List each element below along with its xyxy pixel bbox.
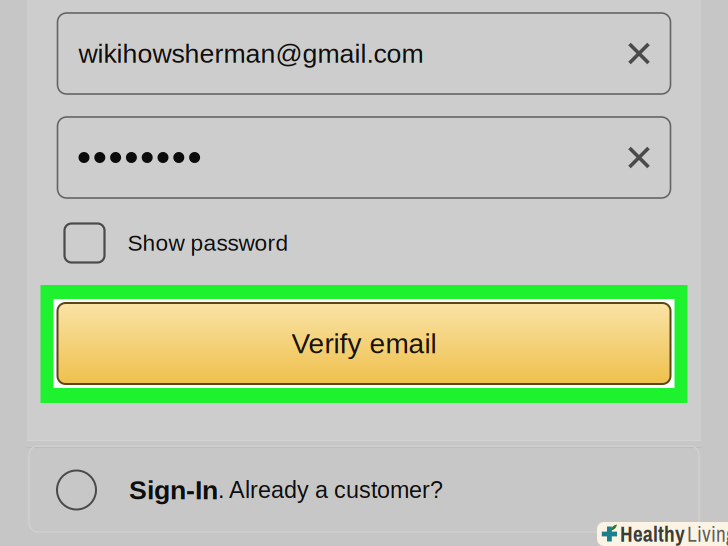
button[interactable] <box>57 117 670 198</box>
staticText: Show password <box>127 230 288 256</box>
staticText: . Already a customer? <box>218 477 443 503</box>
staticText: Verify email <box>291 328 436 359</box>
staticText: wikihowsherman@gmail.com <box>78 39 423 68</box>
staticText: Sign-In <box>129 475 218 505</box>
button[interactable]: Sign-In <box>26 448 702 532</box>
button[interactable]: Show password <box>57 223 670 263</box>
staticText: Living <box>687 520 728 546</box>
button[interactable]: Verify email <box>40 285 687 403</box>
button[interactable]: wikihowsherman@gmail.com <box>57 13 670 94</box>
staticText: Healthy <box>620 520 685 546</box>
